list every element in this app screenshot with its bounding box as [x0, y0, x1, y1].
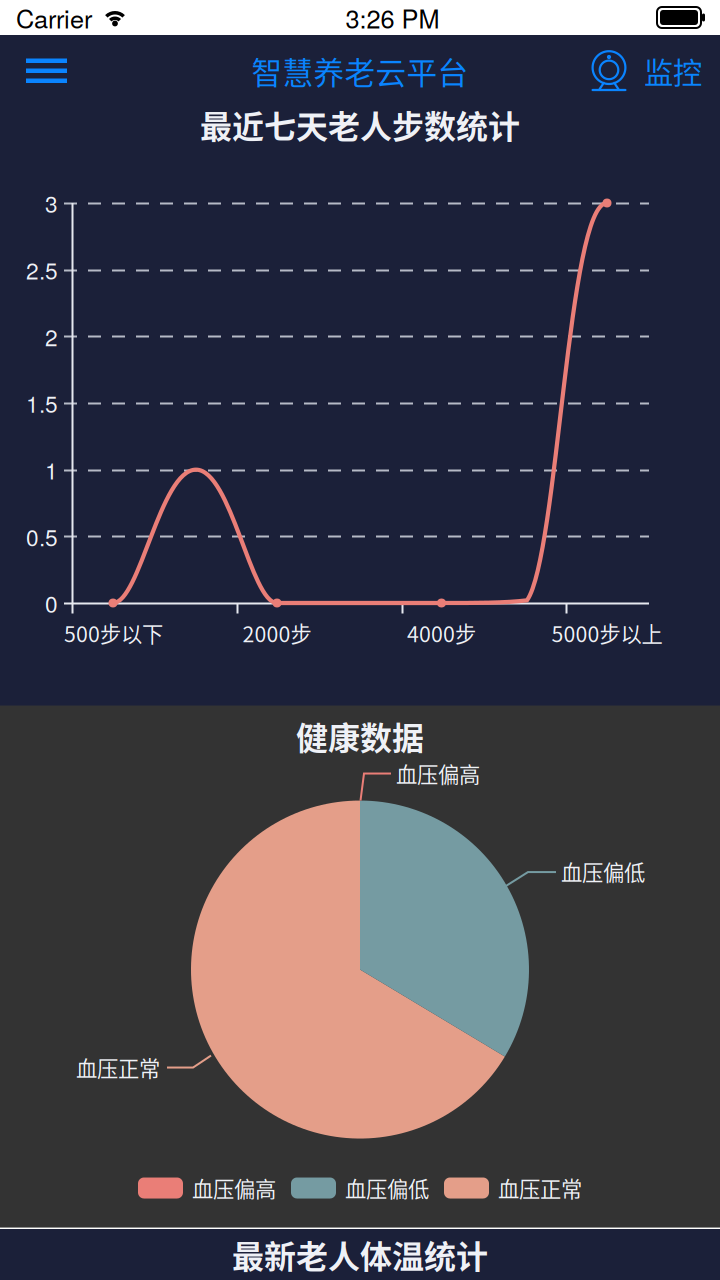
staticText: 5000步以上 — [551, 618, 662, 648]
staticText: 血压正常 — [76, 1052, 160, 1083]
staticText: 血压偏高 — [396, 758, 480, 789]
staticText: Carrier — [16, 0, 92, 36]
staticText: 2.5 — [26, 253, 58, 286]
button[interactable]: 血压偏高 — [138, 1173, 276, 1203]
button[interactable]: 血压正常 — [444, 1173, 582, 1203]
button[interactable]: 监控 — [579, 44, 720, 98]
button[interactable]: 血压偏低 — [291, 1173, 429, 1203]
staticText: 健康数据 — [296, 713, 424, 759]
staticText: 3 — [45, 187, 58, 219]
staticText: 3:26 PM — [345, 0, 439, 36]
staticText: 监控 — [644, 50, 702, 92]
staticText: 2000步 — [242, 618, 311, 648]
staticText: 血压偏低 — [345, 1173, 429, 1203]
staticText: 血压偏高 — [192, 1173, 276, 1203]
staticText: 0.5 — [26, 520, 58, 553]
staticText: 血压正常 — [498, 1173, 582, 1203]
button[interactable]: 菜单 — [0, 42, 89, 99]
staticText: 500步以下 — [64, 618, 163, 648]
staticText: 4000步 — [407, 618, 476, 648]
button[interactable]: 智慧养老云平台 — [241, 43, 478, 99]
staticText: 1 — [45, 453, 58, 486]
staticText: 最新老人体温统计 — [232, 1231, 488, 1278]
staticText: 智慧养老云平台 — [251, 49, 468, 93]
staticText: 0 — [45, 587, 58, 619]
staticText: 2 — [45, 320, 58, 353]
staticText: 血压偏低 — [561, 856, 645, 887]
staticText: 最近七天老人步数统计 — [200, 101, 520, 148]
staticText: 1.5 — [26, 387, 58, 419]
